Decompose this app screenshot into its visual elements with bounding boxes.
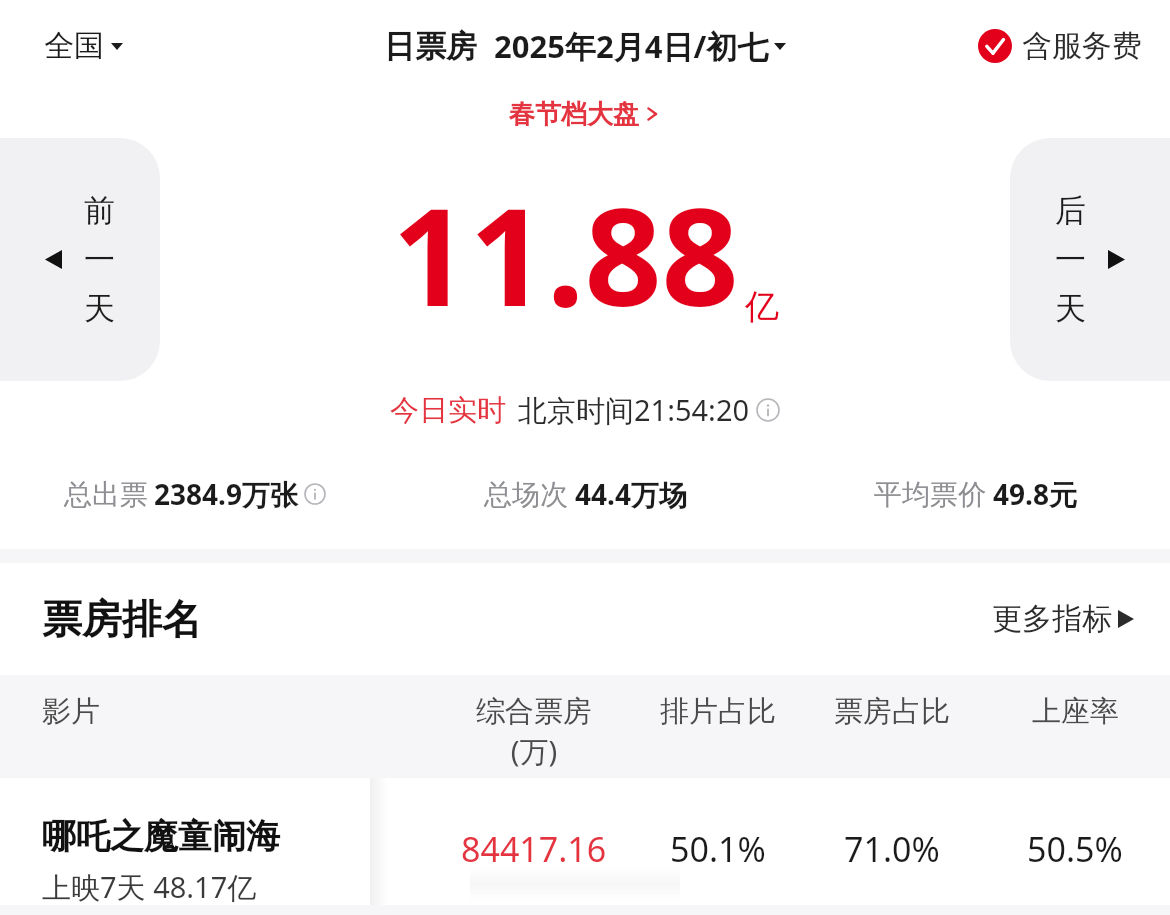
staticText: 上映7天 48.17亿 — [42, 867, 257, 907]
staticText: 后 — [1055, 191, 1086, 230]
button[interactable]: 总出票 — [64, 475, 326, 513]
staticText: 50.5% — [1027, 826, 1123, 872]
staticText: 44.4万场 — [575, 475, 687, 513]
button[interactable]: 含服务费 — [978, 27, 1142, 65]
staticText: 日票房 — [384, 27, 477, 66]
staticText: 更多指标 — [992, 600, 1112, 638]
staticText: 11.88 — [392, 162, 739, 346]
button[interactable]: 后一天 — [1010, 138, 1170, 381]
staticText: 票房占比 — [834, 693, 950, 730]
staticText: 平均票价 — [874, 477, 986, 512]
staticText: 亿 — [745, 285, 779, 328]
staticText: 今日实时 — [390, 392, 506, 429]
staticText: 50.1% — [670, 826, 766, 872]
staticText: 2384.9万张 — [154, 475, 298, 513]
staticText: 49.8元 — [993, 475, 1077, 513]
button[interactable]: 前一天 — [0, 138, 160, 381]
staticText: 天 — [84, 289, 115, 328]
staticText: 综合票房 (万) — [476, 693, 592, 771]
staticText: 总场次 — [484, 477, 568, 512]
staticText: 影片 — [42, 693, 100, 730]
staticText: 前 — [84, 191, 115, 230]
staticText: 总出票 — [64, 477, 148, 512]
staticText: 71.0% — [844, 826, 940, 872]
staticText: 84417.16 — [461, 826, 607, 872]
staticText: 春节档大盘 — [509, 98, 639, 131]
staticText: 北京时间21:54:20 — [518, 390, 750, 430]
staticText: 一 — [84, 240, 115, 279]
button[interactable]: 日票房 — [384, 25, 786, 67]
staticText: 排片占比 — [660, 693, 776, 730]
staticText: 上座率 — [1032, 693, 1119, 730]
button[interactable]: 更多指标 — [992, 600, 1134, 638]
staticText: 天 — [1055, 289, 1086, 328]
staticText: 哪吒之魔童闹海 — [42, 815, 280, 858]
staticText: 一 — [1055, 240, 1086, 279]
staticText: 票房排名 — [42, 594, 202, 644]
staticText: 含服务费 — [1022, 27, 1142, 65]
button[interactable]: 全国 — [44, 27, 123, 65]
staticText: 2025年2月4日/初七 — [494, 25, 769, 67]
button[interactable]: 哪吒之魔童闹海 — [0, 778, 1170, 915]
button[interactable]: 春节档大盘 — [0, 92, 1170, 136]
staticText: 全国 — [44, 27, 104, 65]
